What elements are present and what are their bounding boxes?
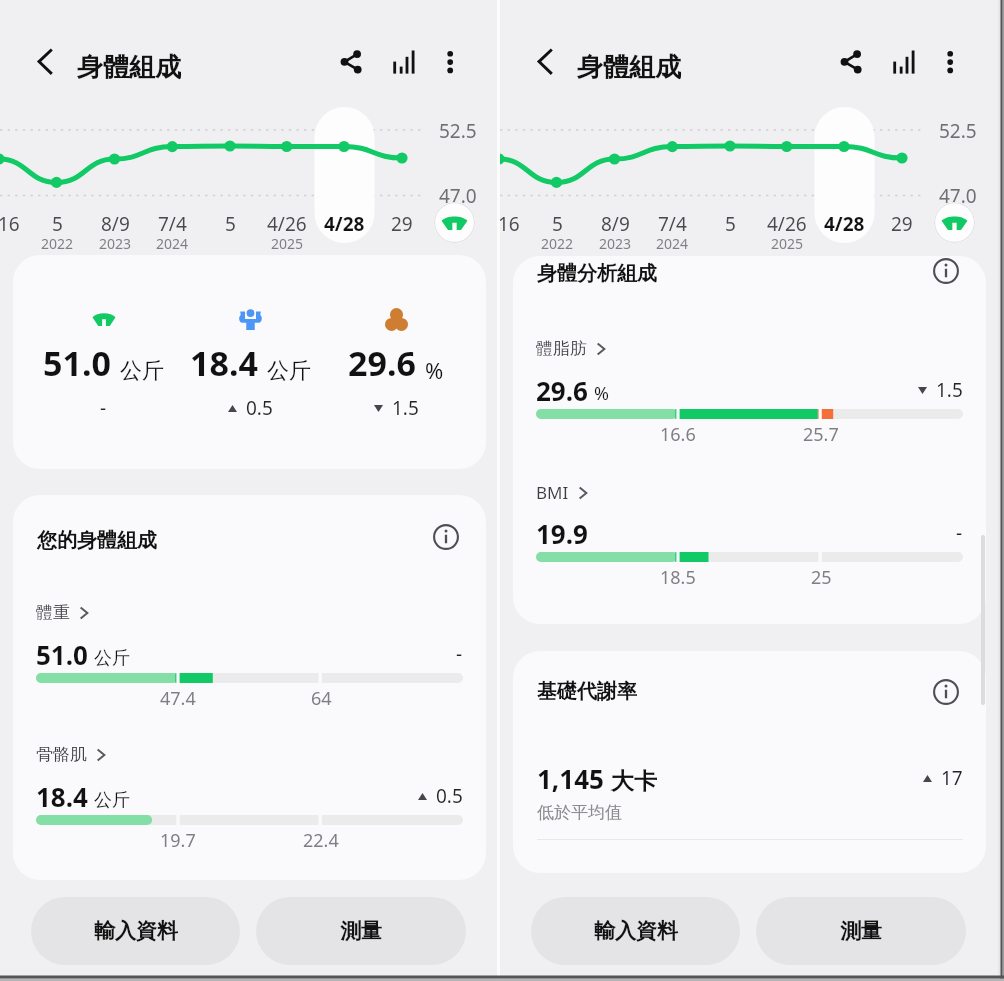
staticText: 8/9 [601,211,630,237]
staticText: 25.7 [803,422,839,447]
staticText: 25 [811,565,832,590]
staticText: 7/4 [158,211,187,237]
staticText: 2023 [99,234,132,253]
staticText: 1.5 [392,395,419,421]
button[interactable]: Weight scale [934,202,975,243]
button[interactable]: BMI [536,481,963,599]
staticText: 2024 [656,234,689,253]
staticText: - [100,395,107,421]
button[interactable]: 51.0 [13,255,486,469]
staticText: 2024 [156,234,189,253]
button[interactable]: 輸入資料 [31,897,240,965]
staticText: 公斤 [120,357,164,385]
staticText: 公斤 [94,647,130,670]
staticText: 身體組成 [77,51,181,84]
staticText: 5 [225,211,236,237]
staticText: 您的身體組成 [37,528,157,553]
staticText: 測量 [340,918,382,944]
staticText: 1.5 [936,377,963,403]
staticText: 體重 [36,602,70,623]
staticText: % [594,381,609,406]
staticText: 低於平均值 [537,802,622,823]
staticText: 測量 [840,918,882,944]
staticText: BMI [536,481,569,504]
staticText: 18.4 [190,340,258,386]
staticText: 47.0 [939,183,977,209]
staticText: 4/28 [824,211,865,237]
button[interactable]: More options [424,36,476,88]
staticText: 18.4 [36,779,88,814]
button[interactable]: Charts [878,36,930,88]
staticText: 基礎代謝率 [537,679,637,704]
staticText: 2023 [599,234,632,253]
staticText: 29 [891,211,913,237]
staticText: % [425,355,444,385]
button[interactable]: Share [826,36,878,88]
button[interactable]: Charts [378,36,430,88]
button[interactable]: Info [928,256,964,289]
staticText: 5 [52,211,63,237]
staticText: 0.5 [436,783,463,809]
staticText: 1,145 [537,761,604,796]
staticText: 大卡 [611,767,657,796]
staticText: 7/4 [658,211,687,237]
staticText: - [456,641,463,667]
button[interactable]: More options [924,36,976,88]
staticText: 身體分析組成 [537,261,657,286]
staticText: 5 [725,211,736,237]
staticText: 17 [941,765,963,791]
staticText: 47.0 [439,183,477,209]
staticText: 2022 [41,234,74,253]
staticText: 29 [391,211,413,237]
button[interactable]: 測量 [256,897,466,965]
button[interactable]: Share [326,36,378,88]
staticText: 29.6 [348,340,416,386]
staticText: 身體組成 [577,51,681,84]
button[interactable]: 骨骼肌 [36,744,463,862]
button[interactable]: 輸入資料 [531,897,740,965]
button[interactable]: 測量 [756,897,966,965]
staticText: 16.6 [660,422,696,447]
button[interactable]: Back [19,37,71,89]
staticText: 52.5 [439,118,477,144]
button[interactable]: 體脂肪 [536,338,963,456]
staticText: 2025 [771,234,804,253]
staticText: 16 [500,211,520,237]
staticText: 19.9 [536,516,588,551]
staticText: 18.5 [660,565,696,590]
staticText: 4/28 [324,211,365,237]
staticText: 輸入資料 [94,918,178,944]
staticText: 8/9 [101,211,130,237]
staticText: 19.7 [160,828,196,853]
staticText: 16 [0,211,20,237]
button[interactable]: 體重 [36,602,463,720]
staticText: - [956,520,963,546]
staticText: 公斤 [94,789,130,812]
staticText: 51.0 [36,637,88,672]
staticText: 公斤 [267,357,311,385]
staticText: 29.6 [536,373,588,408]
staticText: 4/26 [767,211,807,237]
staticText: 4/26 [267,211,307,237]
staticText: 2025 [271,234,304,253]
staticText: 輸入資料 [594,918,678,944]
staticText: 47.4 [160,686,196,711]
staticText: 5 [552,211,563,237]
staticText: 骨骼肌 [36,744,87,765]
staticText: 體脂肪 [536,338,587,359]
staticText: 22.4 [303,828,339,853]
staticText: 52.5 [939,118,977,144]
button[interactable]: Weight scale [434,202,475,243]
staticText: 51.0 [43,340,111,386]
staticText: 64 [311,686,332,711]
staticText: 0.5 [246,395,273,421]
button[interactable]: Info [428,519,464,555]
button[interactable]: Info [928,674,964,710]
button[interactable]: Back [519,37,571,89]
staticText: 2022 [541,234,574,253]
